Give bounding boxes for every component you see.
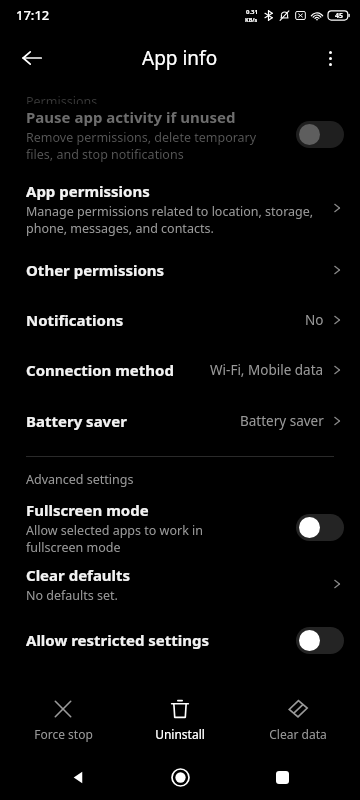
button[interactable]: Back (54, 754, 102, 800)
button[interactable]: Back (10, 36, 54, 80)
button[interactable]: Recents (258, 754, 306, 800)
button[interactable]: Uninstall (125, 686, 235, 754)
staticText: Clear data (269, 726, 327, 742)
button[interactable]: Other permissions (0, 245, 360, 295)
staticText: App info (142, 45, 218, 71)
staticText: Notifications (26, 310, 124, 330)
staticText: Permissions (26, 93, 98, 104)
staticText: Battery saver (26, 411, 127, 431)
staticText: No (305, 311, 324, 329)
button[interactable]: App permissions (0, 171, 360, 245)
staticText: App permissions (26, 181, 150, 201)
staticText: Other permissions (26, 260, 165, 280)
button[interactable]: Home (156, 754, 204, 800)
button[interactable]: Force stop (8, 686, 118, 754)
button[interactable]: Connection method (0, 345, 360, 395)
button[interactable]: Pause app activity if unused (0, 97, 360, 171)
staticText: Advanced settings (26, 471, 134, 488)
button[interactable]: Notifications (0, 295, 360, 345)
staticText: Clear defaults (26, 565, 131, 585)
staticText: 45 (335, 11, 344, 21)
button[interactable]: More options (308, 36, 352, 80)
button[interactable]: Battery saver (0, 395, 360, 447)
button[interactable]: Toggle (296, 121, 344, 148)
button[interactable]: Fullscreen mode (0, 496, 360, 558)
staticText: Pause app activity if unused (26, 107, 236, 127)
staticText: No defaults set. (26, 587, 118, 604)
staticText: Uninstall (155, 726, 205, 742)
staticText: KB/s (245, 16, 258, 23)
staticText: Force stop (34, 726, 93, 742)
staticText: Remove permissions, delete temporary fil… (26, 129, 257, 162)
staticText: Battery saver (240, 412, 324, 430)
button[interactable]: Allow restricted settings (0, 618, 360, 662)
staticText: 17:12 (16, 6, 50, 24)
staticText: Allow selected apps to work in fullscree… (26, 522, 204, 555)
staticText: 0.31 (246, 8, 258, 16)
staticText: Connection method (26, 360, 174, 380)
button[interactable]: Toggle (296, 627, 344, 654)
button[interactable]: Clear data (243, 686, 353, 754)
staticText: Allow restricted settings (26, 630, 210, 650)
staticText: Fullscreen mode (26, 500, 149, 520)
staticText: Wi-Fi, Mobile data (210, 361, 324, 379)
staticText: Manage permissions related to location, … (26, 203, 314, 236)
button[interactable]: Toggle (296, 514, 344, 541)
button[interactable]: Clear defaults (0, 558, 360, 610)
